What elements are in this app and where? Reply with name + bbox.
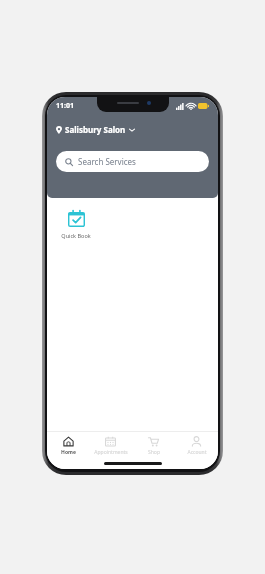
button[interactable]: Account <box>175 431 218 459</box>
staticText: Shop <box>148 449 160 456</box>
staticText: Salisbury Salon <box>65 124 126 135</box>
button[interactable]: Shop <box>132 431 175 459</box>
staticText: Quick Book <box>61 232 91 239</box>
staticText: Search Services <box>78 156 136 167</box>
staticText: Account <box>187 449 207 456</box>
button[interactable]: Salisbury Salon <box>56 124 135 135</box>
button[interactable]: Quick Book <box>56 210 96 239</box>
button[interactable]: Search Services <box>56 151 209 172</box>
staticText: 11:01 <box>56 101 74 111</box>
staticText: Appointments <box>94 449 128 456</box>
button[interactable]: Home <box>47 431 89 459</box>
staticText: Home <box>61 449 76 456</box>
button[interactable]: Appointments <box>89 431 132 459</box>
